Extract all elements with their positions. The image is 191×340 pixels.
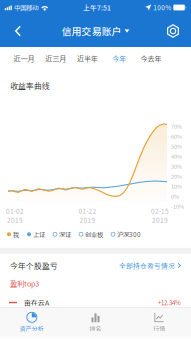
staticText: 盈利top3: [10, 278, 39, 288]
staticText: 70%: [171, 122, 182, 130]
staticText: 全部持仓盈亏情况: [119, 261, 175, 270]
staticText: +12.34%: [158, 298, 181, 307]
staticText: 行情: [153, 324, 165, 333]
staticText: 收益率曲线: [10, 80, 50, 91]
staticText: 2019: [152, 215, 168, 225]
button[interactable]: 资产分析: [0, 308, 64, 338]
button[interactable]: 近半年: [72, 47, 103, 70]
staticText: 我: [13, 230, 19, 239]
staticText: 60%: [171, 132, 182, 140]
staticText: 今去年: [141, 53, 162, 64]
staticText: 30%: [171, 162, 182, 170]
staticText: 上午7:51: [83, 3, 111, 12]
staticText: 40%: [171, 152, 182, 160]
button[interactable]: 近三月: [40, 47, 72, 70]
button[interactable]: 排名: [64, 308, 127, 338]
button[interactable]: 上证: [27, 230, 45, 239]
staticText: 2019: [7, 215, 23, 225]
staticText: 0%: [171, 192, 179, 200]
staticText: 近半年: [77, 53, 98, 64]
staticText: 100%: [153, 3, 171, 12]
button[interactable]: 沪深300: [111, 230, 141, 239]
staticText: 深证: [59, 230, 71, 239]
staticText: 排名: [89, 324, 101, 333]
staticText: 沪深300: [117, 230, 141, 239]
staticText: 10%: [171, 182, 182, 190]
staticText: 01-02: [6, 206, 24, 216]
button[interactable]: 深证: [53, 230, 71, 239]
staticText: 2019: [79, 215, 95, 225]
staticText: -10%: [171, 202, 184, 210]
staticText: 亩在云A: [24, 297, 49, 307]
staticText: 今年: [112, 53, 126, 64]
staticText: 资产分析: [20, 324, 44, 333]
staticText: 中国移动: [14, 3, 38, 12]
staticText: 01-22: [78, 206, 96, 216]
button[interactable]: 今去年: [135, 47, 167, 70]
button[interactable]: 返回: [5, 16, 31, 46]
button[interactable]: 近一月: [8, 47, 40, 70]
staticText: 信用交易账户: [62, 24, 122, 38]
staticText: 近一月: [13, 53, 34, 64]
button[interactable]: 今年: [103, 47, 135, 70]
staticText: 创业板: [85, 230, 103, 239]
button[interactable]: 创业板: [79, 230, 103, 239]
staticText: 近三月: [45, 53, 66, 64]
button[interactable]: 设置: [160, 16, 186, 46]
button[interactable]: 行情: [127, 308, 191, 338]
staticText: 上证: [33, 230, 45, 239]
staticText: 今年个股盈亏: [10, 260, 58, 271]
staticText: 02-15: [151, 206, 169, 216]
button[interactable]: 信用交易账户: [62, 16, 129, 46]
button[interactable]: 我: [7, 230, 19, 239]
staticText: 20%: [171, 172, 182, 180]
button[interactable]: 全部持仓盈亏情况: [119, 261, 181, 270]
staticText: 50%: [171, 142, 182, 150]
